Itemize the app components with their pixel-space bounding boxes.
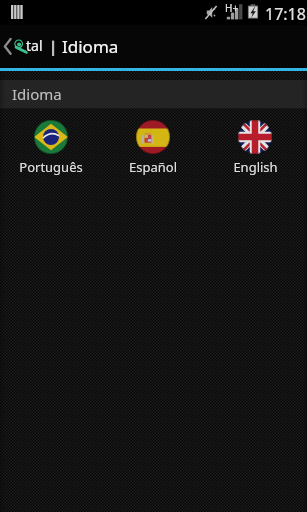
- staticText: Idioma: [12, 84, 62, 104]
- staticText: Idioma: [62, 35, 119, 58]
- button[interactable]: English: [204, 120, 306, 176]
- button[interactable]: Navigate up: [0, 25, 46, 67]
- staticText: Português: [19, 158, 83, 176]
- staticText: tal: [27, 35, 44, 54]
- staticText: tal: [26, 36, 43, 55]
- staticText: tal: [27, 37, 44, 56]
- staticText: tal: [25, 36, 42, 55]
- staticText: tal: [27, 36, 44, 55]
- staticText: tal: [25, 35, 42, 54]
- button[interactable]: Español: [102, 120, 204, 176]
- staticText: tal: [26, 35, 43, 54]
- staticText: 17:18: [265, 3, 306, 25]
- button[interactable]: Português: [0, 120, 102, 176]
- staticText: H+: [225, 1, 239, 15]
- staticText: Español: [129, 158, 177, 176]
- staticText: English: [233, 158, 278, 176]
- staticText: tal: [26, 37, 43, 56]
- staticText: tal: [25, 37, 42, 56]
